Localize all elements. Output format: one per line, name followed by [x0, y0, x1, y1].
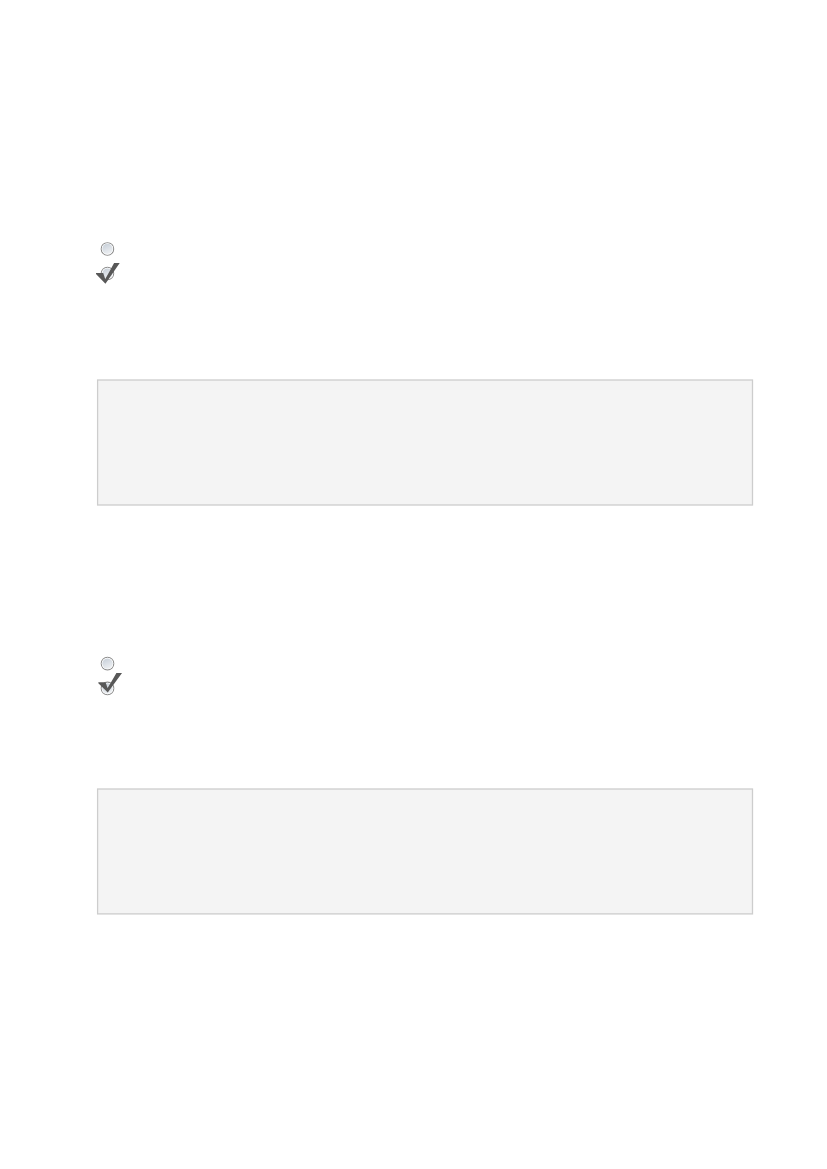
button[interactable]: Question 1, option 1 [99, 241, 116, 257]
button[interactable]: Question 2, option 1 [99, 656, 116, 672]
button[interactable]: Question 1, option 2, selected [99, 266, 116, 282]
button[interactable]: Question 2 answer box [97, 788, 754, 916]
button[interactable]: Question 1 answer box [97, 379, 754, 507]
button[interactable]: Question 2, option 2, selected [99, 681, 116, 697]
